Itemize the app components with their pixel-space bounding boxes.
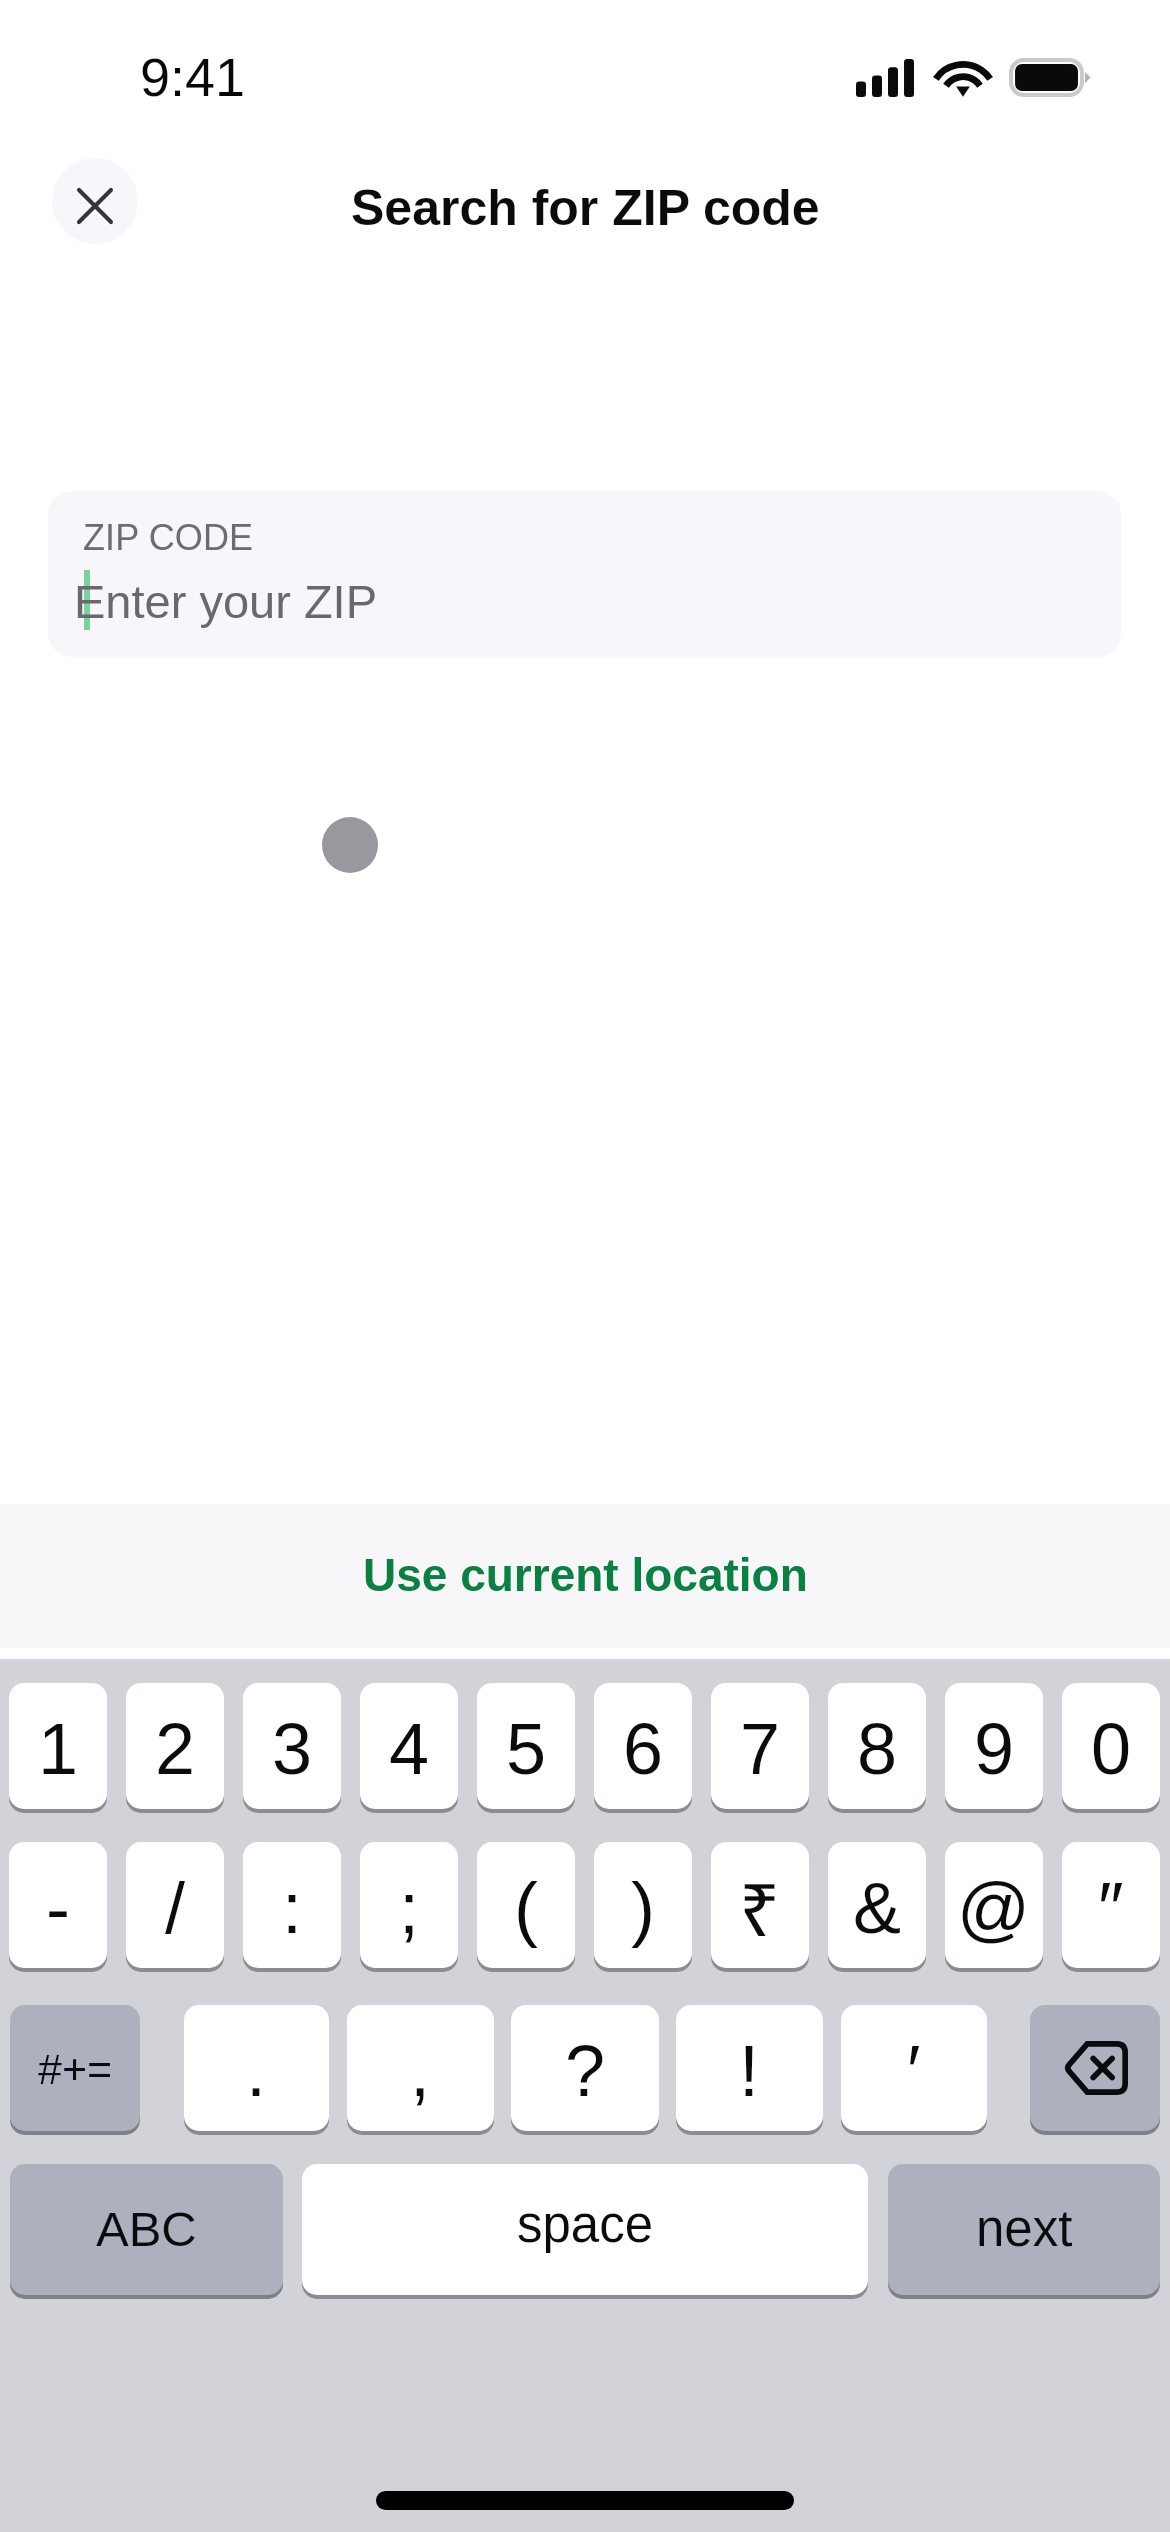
button[interactable]: . — [184, 2005, 329, 2131]
staticText: ( — [514, 1868, 538, 1948]
button[interactable]: 7 — [711, 1683, 809, 1809]
staticText: ! — [739, 2031, 760, 2111]
button[interactable]: next — [888, 2164, 1160, 2295]
staticText: next — [976, 2200, 1073, 2257]
button[interactable]: ″ — [1062, 1842, 1160, 1968]
staticText: ₹ — [739, 1859, 781, 1957]
staticText: 5 — [506, 1709, 547, 1789]
button[interactable]: Use current location — [0, 1504, 1170, 1648]
staticText: 2 — [155, 1709, 196, 1789]
button[interactable]: @ — [945, 1842, 1043, 1968]
staticText: ) — [631, 1868, 655, 1948]
button[interactable]: / — [126, 1842, 224, 1968]
staticText: space — [517, 2196, 654, 2253]
staticText: & — [853, 1868, 902, 1948]
button[interactable]: 9 — [945, 1683, 1043, 1809]
staticText: 1 — [38, 1709, 79, 1789]
staticText: - — [46, 1868, 70, 1948]
staticText: @ — [957, 1868, 1031, 1948]
button[interactable]: 1 — [9, 1683, 107, 1809]
staticText: Enter your ZIP — [74, 575, 377, 628]
button[interactable]: ABC — [10, 2164, 283, 2295]
staticText: ′ — [907, 2031, 921, 2111]
button[interactable]: ! — [676, 2005, 823, 2131]
staticText: / — [165, 1868, 186, 1948]
button[interactable]: ? — [511, 2005, 659, 2131]
staticText: , — [410, 2031, 431, 2111]
button[interactable]: : — [243, 1842, 341, 1968]
staticText: . — [246, 2031, 267, 2111]
button[interactable]: 3 — [243, 1683, 341, 1809]
button[interactable]: ( — [477, 1842, 575, 1968]
button[interactable]: ) — [594, 1842, 692, 1968]
button[interactable]: 2 — [126, 1683, 224, 1809]
button[interactable]: 5 — [477, 1683, 575, 1809]
button[interactable]: 4 — [360, 1683, 458, 1809]
button[interactable]: ₹ — [711, 1842, 809, 1968]
button[interactable]: ZIP CODE — [48, 491, 1121, 657]
staticText: ; — [399, 1868, 420, 1948]
button[interactable]: Close — [52, 158, 138, 244]
staticText: 6 — [623, 1709, 664, 1789]
staticText: 8 — [857, 1709, 898, 1789]
staticText: Search for ZIP code — [351, 180, 820, 236]
staticText: 4 — [389, 1709, 430, 1789]
button[interactable]: , — [347, 2005, 494, 2131]
staticText: 9:41 — [140, 47, 246, 107]
staticText: ZIP CODE — [83, 517, 254, 557]
staticText: ABC — [96, 2202, 197, 2257]
button[interactable]: Backspace — [1030, 2005, 1160, 2131]
button[interactable]: #+= — [10, 2005, 140, 2131]
staticText: 7 — [740, 1709, 781, 1789]
button[interactable]: 0 — [1062, 1683, 1160, 1809]
button[interactable]: ; — [360, 1842, 458, 1968]
staticText: ″ — [1098, 1868, 1124, 1948]
staticText: ? — [565, 2031, 606, 2111]
button[interactable]: ′ — [841, 2005, 987, 2131]
button[interactable]: 8 — [828, 1683, 926, 1809]
button[interactable]: 6 — [594, 1683, 692, 1809]
staticText: 9 — [974, 1709, 1015, 1789]
staticText: : — [282, 1868, 303, 1948]
staticText: #+= — [38, 2045, 113, 2093]
staticText: Use current location — [363, 1549, 808, 1600]
button[interactable]: & — [828, 1842, 926, 1968]
button[interactable]: - — [9, 1842, 107, 1968]
staticText: 0 — [1091, 1709, 1132, 1789]
button[interactable]: space — [302, 2164, 868, 2295]
staticText: 3 — [272, 1709, 313, 1789]
